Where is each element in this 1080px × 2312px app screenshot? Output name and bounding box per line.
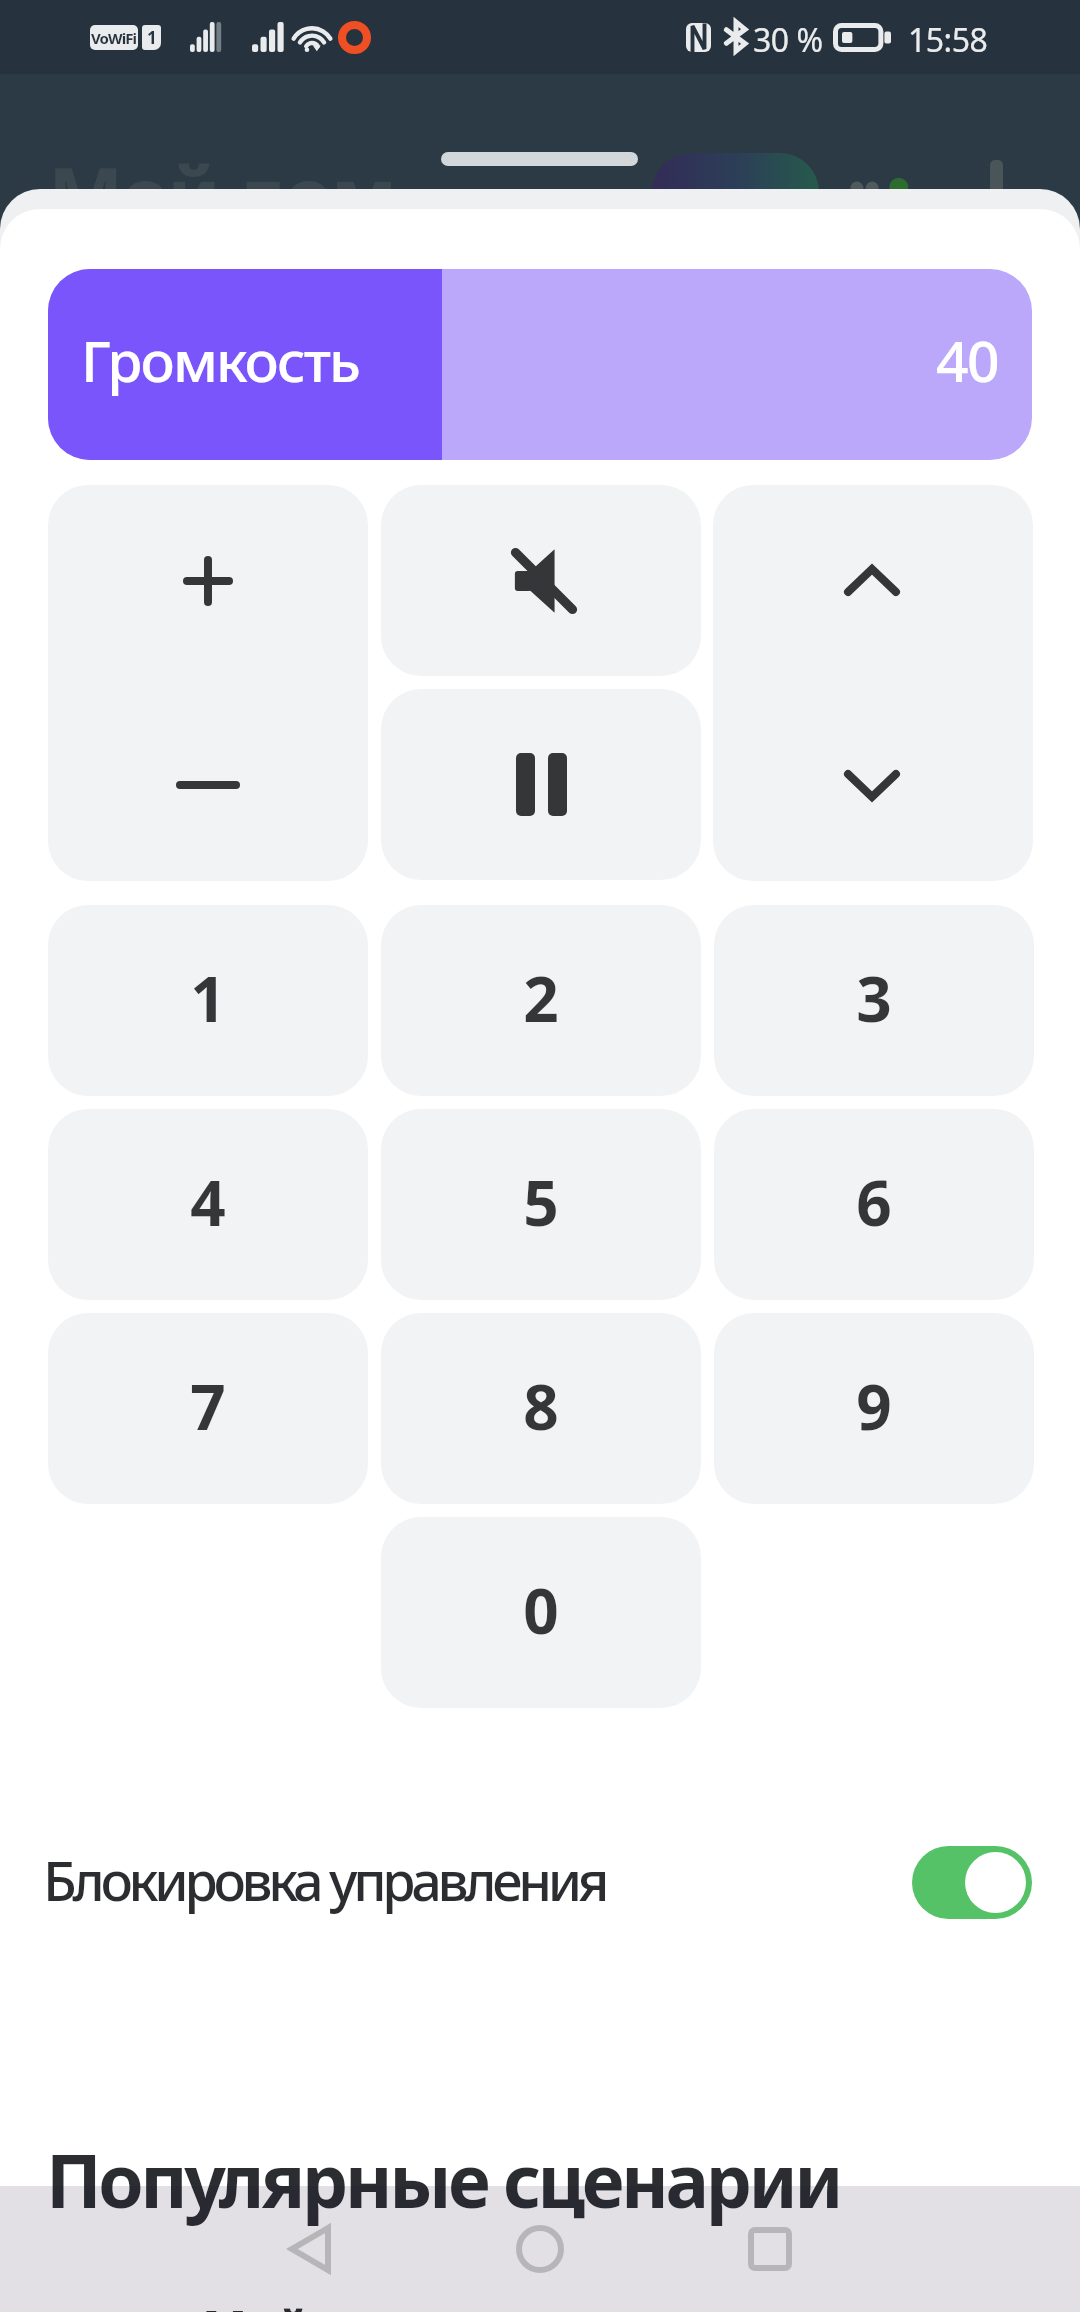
button[interactable]: 3 [714,905,1034,1096]
button[interactable]: Последние приложения [728,2207,812,2291]
button[interactable]: 1 [48,905,368,1096]
button[interactable]: Назад [268,2207,352,2291]
button[interactable]: Предыдущий канал [713,683,1033,881]
staticText: 4 [190,1160,226,1244]
button[interactable]: Пауза [381,689,701,880]
staticText: Мой дом [48,140,395,249]
staticText: 9 [856,1364,892,1448]
button[interactable]: 7 [48,1313,368,1504]
staticText: 8 [523,1364,559,1448]
staticText: 6 [856,1160,892,1244]
staticText: 1 [190,956,226,1040]
button[interactable]: 9 [714,1313,1034,1504]
staticText: Про [694,179,773,231]
button[interactable]: 4 [48,1109,368,1300]
staticText: 1 [147,26,157,49]
button[interactable]: 8 [381,1313,701,1504]
staticText: 3 [856,956,892,1040]
staticText: 0 [523,1568,559,1652]
button[interactable]: 0 [381,1517,701,1708]
button[interactable]: Уменьшить громкость [48,683,368,881]
button[interactable]: Блокировка управления [0,1802,1080,1963]
button[interactable]: 6 [714,1109,1034,1300]
staticText: 30 % [753,18,823,62]
staticText: 40 [936,321,999,399]
staticText: 15:58 [908,18,988,62]
staticText: VoWiFi [91,28,137,48]
button[interactable]: Увеличить громкость [48,485,368,683]
button[interactable]: Главный экран [498,2207,582,2291]
staticText: 2 [523,956,559,1040]
staticText: Мой дом [202,2295,423,2312]
staticText: 7 [190,1364,226,1448]
button[interactable]: Громкость [48,269,1032,460]
button[interactable]: Следующий канал [713,485,1033,683]
staticText: Блокировка управления [43,1843,606,1917]
button[interactable]: Выключить звук [381,485,701,676]
button[interactable]: 5 [381,1109,701,1300]
button[interactable]: 2 [381,905,701,1096]
staticText: Популярные сценарии [46,2130,841,2229]
staticText: 5 [523,1160,559,1244]
staticText: Громкость [81,321,359,399]
